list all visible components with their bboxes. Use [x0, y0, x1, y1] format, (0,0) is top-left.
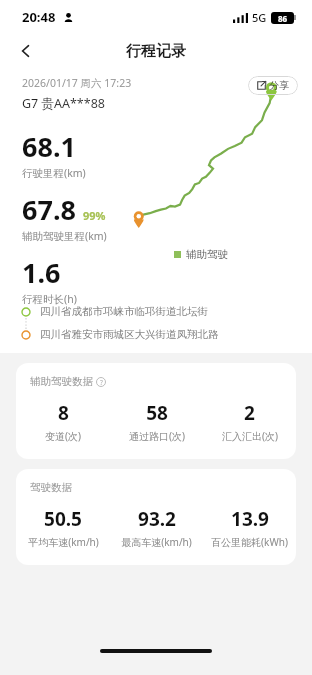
button[interactable]: 93.2 — [110, 506, 203, 549]
button[interactable]: 8 — [16, 400, 110, 443]
staticText: 93.2 — [138, 506, 176, 532]
staticText: 2026/01/17 周六 17:23 — [22, 76, 132, 90]
staticText: 辅助驾驶 — [186, 248, 228, 261]
staticText: 58 — [146, 400, 168, 426]
staticText: 13.9 — [231, 506, 269, 532]
staticText: ? — [100, 378, 103, 387]
staticText: 百公里能耗(kWh) — [211, 535, 288, 549]
staticText: 5G — [252, 10, 267, 25]
button[interactable]: 分享 — [248, 76, 298, 95]
staticText: 四川省成都市邛崃市临邛街道北坛街 — [40, 305, 208, 318]
staticText: 20:48 — [22, 8, 56, 26]
button[interactable]: 13.9 — [203, 506, 296, 549]
staticText: 四川省雅安市雨城区大兴街道凤翔北路 — [40, 328, 219, 341]
button[interactable]: Back — [10, 35, 42, 67]
staticText: 通过路口(次) — [129, 429, 185, 443]
staticText: 行驶里程(km) — [22, 166, 86, 180]
staticText: G7 贵AA***88 — [22, 95, 105, 112]
button[interactable]: 2 — [203, 400, 296, 443]
button[interactable]: 50.5 — [16, 506, 110, 549]
staticText: 辅助驾驶数据 — [30, 375, 93, 388]
button[interactable]: 58 — [110, 400, 203, 443]
staticText: 行程时长(h) — [22, 292, 77, 306]
staticText: 2 — [244, 400, 255, 426]
staticText: 驾驶数据 — [30, 481, 72, 494]
staticText: 99% — [83, 208, 106, 223]
staticText: 8 — [58, 400, 69, 426]
staticText: 50.5 — [44, 506, 82, 532]
staticText: 分享 — [269, 79, 289, 92]
staticText: 68.1 — [22, 128, 76, 165]
staticText: 67.8 — [22, 191, 76, 228]
staticText: 最高车速(km/h) — [121, 535, 192, 549]
staticText: 辅助驾驶里程(km) — [22, 229, 107, 243]
staticText: 1.6 — [22, 254, 61, 291]
staticText: 变道(次) — [45, 429, 81, 443]
staticText: 平均车速(km/h) — [28, 535, 99, 549]
button[interactable]: 说明 — [96, 377, 106, 387]
staticText: 86 — [278, 13, 288, 24]
staticText: 汇入汇出(次) — [222, 429, 278, 443]
staticText: 行程记录 — [126, 42, 186, 61]
